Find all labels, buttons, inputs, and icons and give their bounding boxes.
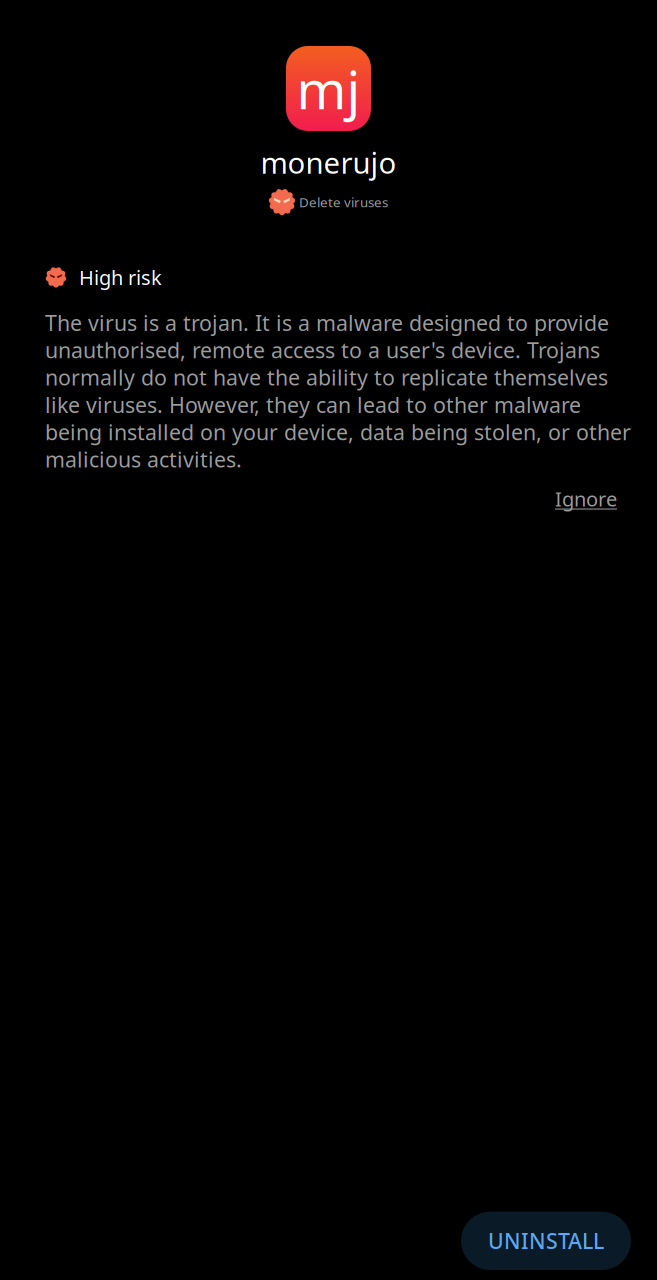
staticText: UNINSTALL — [488, 1227, 604, 1255]
staticText: mj — [296, 53, 360, 124]
staticText: Ignore — [555, 485, 617, 512]
button[interactable]: UNINSTALL — [461, 1212, 631, 1270]
staticText: monerujo — [260, 143, 396, 182]
staticText: High risk — [79, 264, 162, 291]
staticText: Delete viruses — [299, 193, 388, 211]
button[interactable]: Ignore — [545, 479, 627, 518]
staticText: The virus is a trojan. It is a malware d… — [45, 308, 631, 473]
